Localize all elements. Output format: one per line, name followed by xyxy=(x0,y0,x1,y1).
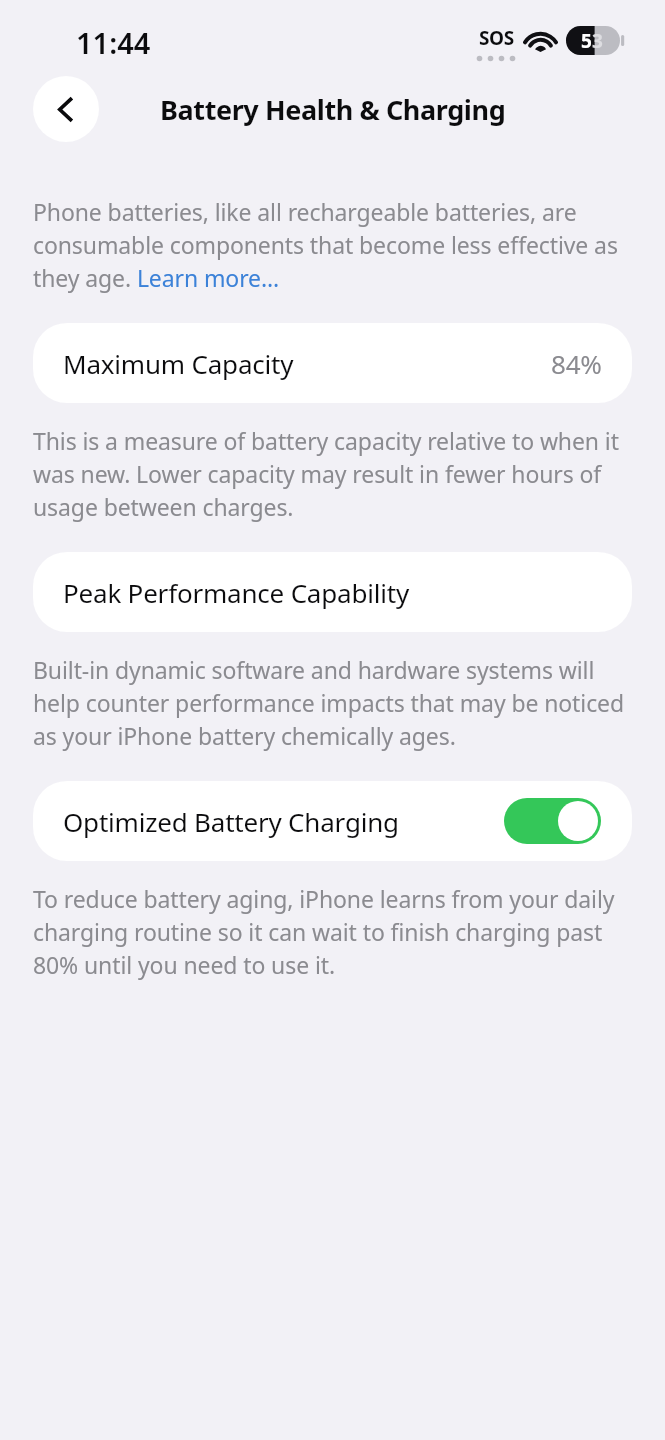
staticText: 84% xyxy=(551,346,602,381)
staticText: Maximum Capacity xyxy=(63,346,294,381)
other: Wi-Fi xyxy=(521,26,560,55)
button[interactable]: Back xyxy=(33,76,99,142)
button[interactable]: Optimized Battery Charging xyxy=(33,781,632,861)
staticText: Optimized Battery Charging xyxy=(63,804,399,839)
button[interactable]: Maximum Capacity xyxy=(33,323,632,403)
staticText: 3 xyxy=(592,28,603,54)
staticText: SOS xyxy=(479,25,514,51)
staticText: This is a measure of battery capacity re… xyxy=(33,425,632,523)
button[interactable]: Optimized Battery Charging, on xyxy=(504,798,601,844)
staticText: Peak Performance Capability xyxy=(63,575,409,610)
staticText: 5 xyxy=(581,28,592,54)
staticText: Battery Health & Charging xyxy=(160,91,506,128)
staticText: Phone batteries, like all rechargeable b… xyxy=(33,196,632,294)
staticText: Built-in dynamic software and hardware s… xyxy=(33,654,632,752)
button[interactable]: Peak Performance Capability xyxy=(33,552,632,632)
staticText: To reduce battery aging, iPhone learns f… xyxy=(33,883,632,981)
staticText: 11:44 xyxy=(76,23,151,62)
